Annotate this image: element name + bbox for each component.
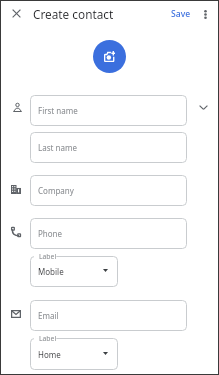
staticText: Phone bbox=[38, 228, 63, 239]
button[interactable]: First name bbox=[30, 95, 187, 126]
button[interactable]: Add photo bbox=[93, 40, 126, 73]
staticText: Mobile bbox=[38, 266, 64, 277]
staticText: Save bbox=[171, 8, 191, 20]
button[interactable]: Email bbox=[30, 300, 187, 331]
staticText: Last name bbox=[38, 142, 77, 153]
button[interactable]: Phone bbox=[30, 218, 187, 249]
button[interactable]: Close bbox=[7, 4, 26, 23]
button[interactable]: Label bbox=[30, 256, 118, 287]
staticText: Label bbox=[39, 334, 57, 343]
staticText: Create contact bbox=[33, 6, 114, 22]
button[interactable]: Company bbox=[30, 175, 187, 206]
staticText: Email bbox=[38, 310, 59, 321]
button[interactable]: Last name bbox=[30, 132, 187, 163]
button[interactable]: More options bbox=[197, 6, 214, 23]
button[interactable]: Label bbox=[30, 338, 118, 370]
button[interactable]: Save bbox=[165, 4, 197, 24]
staticText: First name bbox=[38, 105, 78, 116]
staticText: Company bbox=[38, 185, 74, 196]
staticText: Home bbox=[38, 349, 61, 360]
staticText: Label bbox=[39, 252, 57, 261]
button[interactable]: Expand name fields bbox=[194, 98, 212, 116]
